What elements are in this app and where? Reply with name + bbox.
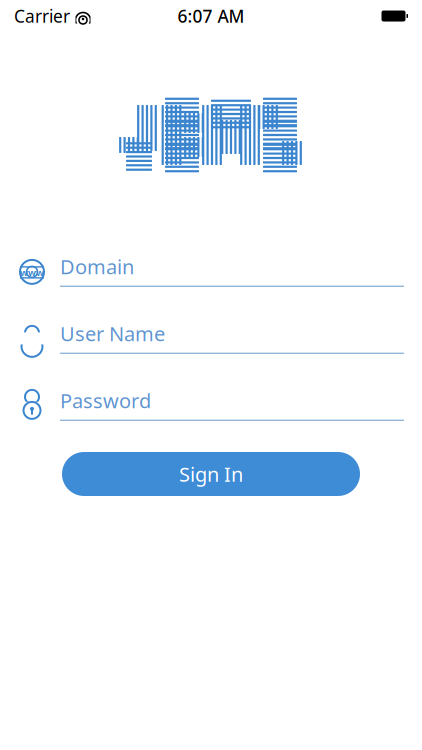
button[interactable]: User Name bbox=[0, 315, 422, 359]
staticText: Domain bbox=[60, 253, 134, 280]
staticText: User Name bbox=[60, 320, 165, 347]
staticText: Carrier bbox=[14, 4, 70, 27]
staticText: 6:07 AM bbox=[177, 4, 244, 27]
button[interactable]: www bbox=[0, 248, 422, 292]
button[interactable]: Password bbox=[0, 382, 422, 426]
staticText: www bbox=[20, 266, 44, 279]
staticText: Sign In bbox=[179, 461, 243, 487]
staticText: Password bbox=[60, 387, 151, 414]
button[interactable]: Sign In bbox=[62, 452, 360, 496]
